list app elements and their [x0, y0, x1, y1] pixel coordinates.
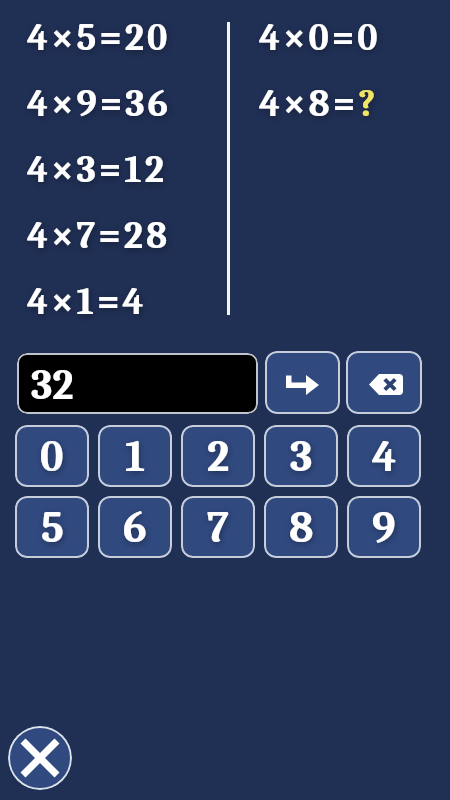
staticText: 4 — [372, 431, 397, 482]
staticText: 32 — [31, 361, 74, 409]
button[interactable]: 0 — [15, 425, 89, 487]
button[interactable] — [265, 351, 340, 414]
staticText: 6 — [123, 502, 147, 553]
button[interactable]: 4 — [347, 425, 421, 487]
staticText: 4×7=28 — [27, 214, 171, 258]
staticText: 8 — [289, 502, 314, 553]
staticText: 4×3=12 — [27, 148, 167, 192]
button[interactable] — [346, 351, 422, 414]
button[interactable]: 3 — [264, 425, 338, 487]
staticText: 4×9=36 — [27, 82, 172, 126]
button[interactable]: 5 — [15, 496, 89, 558]
button[interactable]: 1 — [98, 425, 172, 487]
staticText: 9 — [372, 502, 396, 553]
staticText: 0 — [40, 431, 64, 482]
button[interactable]: 8 — [264, 496, 338, 558]
button[interactable]: 9 — [347, 496, 421, 558]
button[interactable]: 2 — [181, 425, 255, 487]
staticText: 1 — [125, 431, 146, 482]
staticText: 3 — [290, 431, 313, 482]
button[interactable]: 32 — [17, 353, 258, 414]
button[interactable]: 7 — [181, 496, 255, 558]
staticText: 4×0=0 — [259, 16, 381, 60]
button[interactable]: 6 — [98, 496, 172, 558]
staticText: 4×5=20 — [27, 16, 171, 60]
staticText: 5 — [41, 502, 64, 553]
staticText: 4×1=4 — [27, 280, 147, 324]
staticText: 2 — [207, 431, 230, 482]
staticText: 4×8=? — [259, 82, 379, 126]
button[interactable] — [8, 726, 72, 790]
staticText: 7 — [207, 502, 229, 553]
